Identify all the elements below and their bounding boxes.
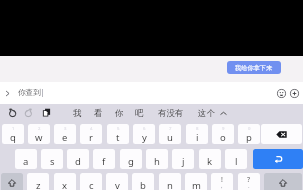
staticText: 我 (73, 108, 82, 119)
staticText: g (128, 155, 134, 168)
button[interactable]: m (185, 173, 207, 190)
button[interactable]: Shift (1, 173, 23, 190)
staticText: 你查到 (18, 88, 41, 98)
button[interactable]: z (27, 173, 49, 190)
button[interactable]: k (199, 149, 221, 169)
staticText: w (35, 131, 43, 144)
staticText: 我给你拿下来 (235, 64, 273, 72)
staticText: x (62, 179, 68, 190)
button[interactable]: 1 (2, 124, 24, 144)
button[interactable]: ! (211, 173, 233, 190)
staticText: a (23, 155, 29, 168)
staticText: 0 (248, 126, 251, 132)
button[interactable]: Enter (253, 149, 303, 169)
staticText: 5 (117, 126, 120, 132)
button[interactable]: More candidates (215, 104, 231, 123)
button[interactable]: Clipboard (37, 104, 55, 123)
staticText: t (116, 131, 120, 144)
button[interactable]: ? (238, 173, 260, 190)
staticText: k (207, 155, 213, 168)
button[interactable]: Backspace (261, 124, 302, 144)
button[interactable]: Redo (19, 104, 37, 123)
staticText: ! (221, 175, 223, 185)
button[interactable]: Add attachment (284, 82, 303, 104)
staticText: q (10, 131, 16, 144)
staticText: f (102, 155, 106, 168)
staticText: , (221, 182, 223, 190)
button[interactable]: 5 (107, 124, 129, 144)
button[interactable]: 你 (103, 104, 135, 123)
button[interactable]: 8 (186, 124, 208, 144)
staticText: c (89, 179, 94, 190)
staticText: e (62, 131, 68, 144)
button[interactable]: b (132, 173, 154, 190)
staticText: m (192, 179, 201, 190)
button[interactable]: 9 (212, 124, 234, 144)
staticText: 6 (143, 126, 146, 132)
button[interactable]: 有没有 (155, 104, 187, 123)
button[interactable]: x (54, 173, 76, 190)
staticText: 1 (12, 126, 15, 132)
button[interactable]: Undo (3, 104, 21, 123)
button[interactable]: 吧 (123, 104, 155, 123)
staticText: 9 (222, 126, 225, 132)
button[interactable]: 看 (82, 104, 114, 123)
staticText: 吧 (135, 108, 144, 119)
button[interactable]: Expand toolbar (1, 82, 14, 104)
staticText: 这个 (198, 108, 215, 119)
button[interactable]: Shift (264, 173, 302, 190)
button[interactable]: Emoji (271, 82, 291, 104)
staticText: l (235, 155, 238, 168)
staticText: 7 (169, 126, 172, 132)
button[interactable]: j (172, 149, 194, 169)
button[interactable]: 2 (28, 124, 50, 144)
staticText: y (142, 131, 147, 144)
button[interactable]: g (120, 149, 142, 169)
staticText: j (182, 155, 185, 168)
staticText: s (50, 155, 55, 168)
staticText: o (220, 131, 226, 144)
staticText: r (89, 131, 93, 144)
button[interactable]: 3 (54, 124, 76, 144)
button[interactable]: f (93, 149, 115, 169)
staticText: . (248, 182, 250, 190)
staticText: 2 (38, 126, 41, 132)
button[interactable]: h (146, 149, 168, 169)
staticText: 4 (90, 126, 93, 132)
staticText: u (167, 131, 173, 144)
staticText: 8 (196, 126, 199, 132)
button[interactable]: c (80, 173, 102, 190)
staticText: 你 (115, 108, 124, 119)
staticText: n (167, 179, 173, 190)
button[interactable]: s (41, 149, 63, 169)
staticText: z (36, 179, 41, 190)
staticText: 3 (64, 126, 67, 132)
button[interactable]: 7 (159, 124, 181, 144)
staticText: i (196, 131, 199, 144)
button[interactable]: d (67, 149, 89, 169)
staticText: b (140, 179, 146, 190)
staticText: ? (247, 175, 251, 185)
button[interactable]: 我给你拿下来 (227, 61, 281, 74)
staticText: v (115, 179, 120, 190)
button[interactable]: v (106, 173, 128, 190)
button[interactable]: 6 (133, 124, 155, 144)
button[interactable]: l (225, 149, 247, 169)
staticText: h (154, 155, 160, 168)
button[interactable]: 0 (238, 124, 260, 144)
staticText: 看 (94, 108, 103, 119)
button[interactable]: 4 (80, 124, 102, 144)
button[interactable]: n (159, 173, 181, 190)
button[interactable]: 我 (61, 104, 93, 123)
staticText: p (246, 131, 252, 144)
staticText: 有没有 (158, 108, 184, 119)
button[interactable]: 这个 (190, 104, 222, 123)
staticText: d (75, 155, 81, 168)
button[interactable]: a (15, 149, 37, 169)
